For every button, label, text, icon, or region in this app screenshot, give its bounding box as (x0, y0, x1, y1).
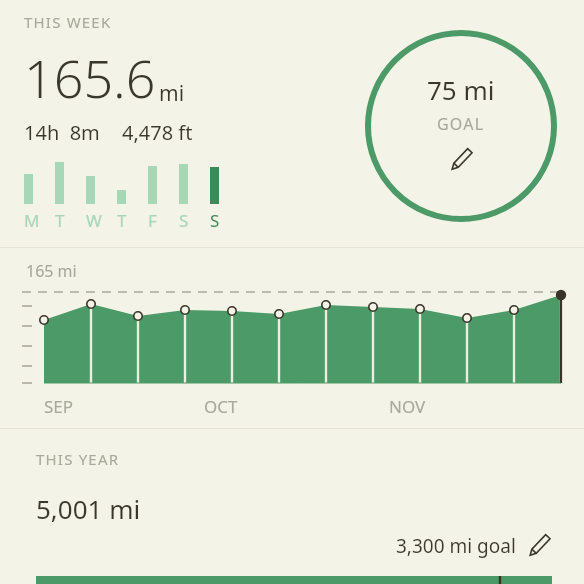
staticText: F (148, 209, 157, 232)
staticText: NOV (389, 395, 426, 418)
staticText: 165 mi (26, 260, 77, 282)
staticText: S (179, 209, 189, 232)
button[interactable]: 3,300 mi goal (396, 533, 552, 559)
staticText: T (55, 209, 65, 232)
staticText: W (86, 209, 102, 232)
other: Edit yearly goal (526, 533, 552, 559)
staticText: T (117, 209, 127, 232)
staticText: mi (159, 79, 185, 108)
staticText: SEP (44, 395, 74, 418)
staticText: OCT (204, 395, 238, 418)
staticText: THIS YEAR (36, 449, 120, 469)
staticText: M (24, 209, 40, 232)
staticText: 4,478 ft (122, 119, 193, 146)
staticText: THIS WEEK (24, 12, 112, 32)
staticText: 75 mi (427, 72, 495, 107)
staticText: 3,300 mi goal (396, 533, 516, 559)
staticText: 5,001 mi (36, 491, 141, 526)
staticText: S (210, 209, 220, 232)
staticText: 165.6 (24, 42, 156, 113)
staticText: 14h 8m (24, 119, 100, 146)
button[interactable]: Edit weekly goal (365, 30, 557, 222)
staticText: GOAL (437, 113, 485, 135)
